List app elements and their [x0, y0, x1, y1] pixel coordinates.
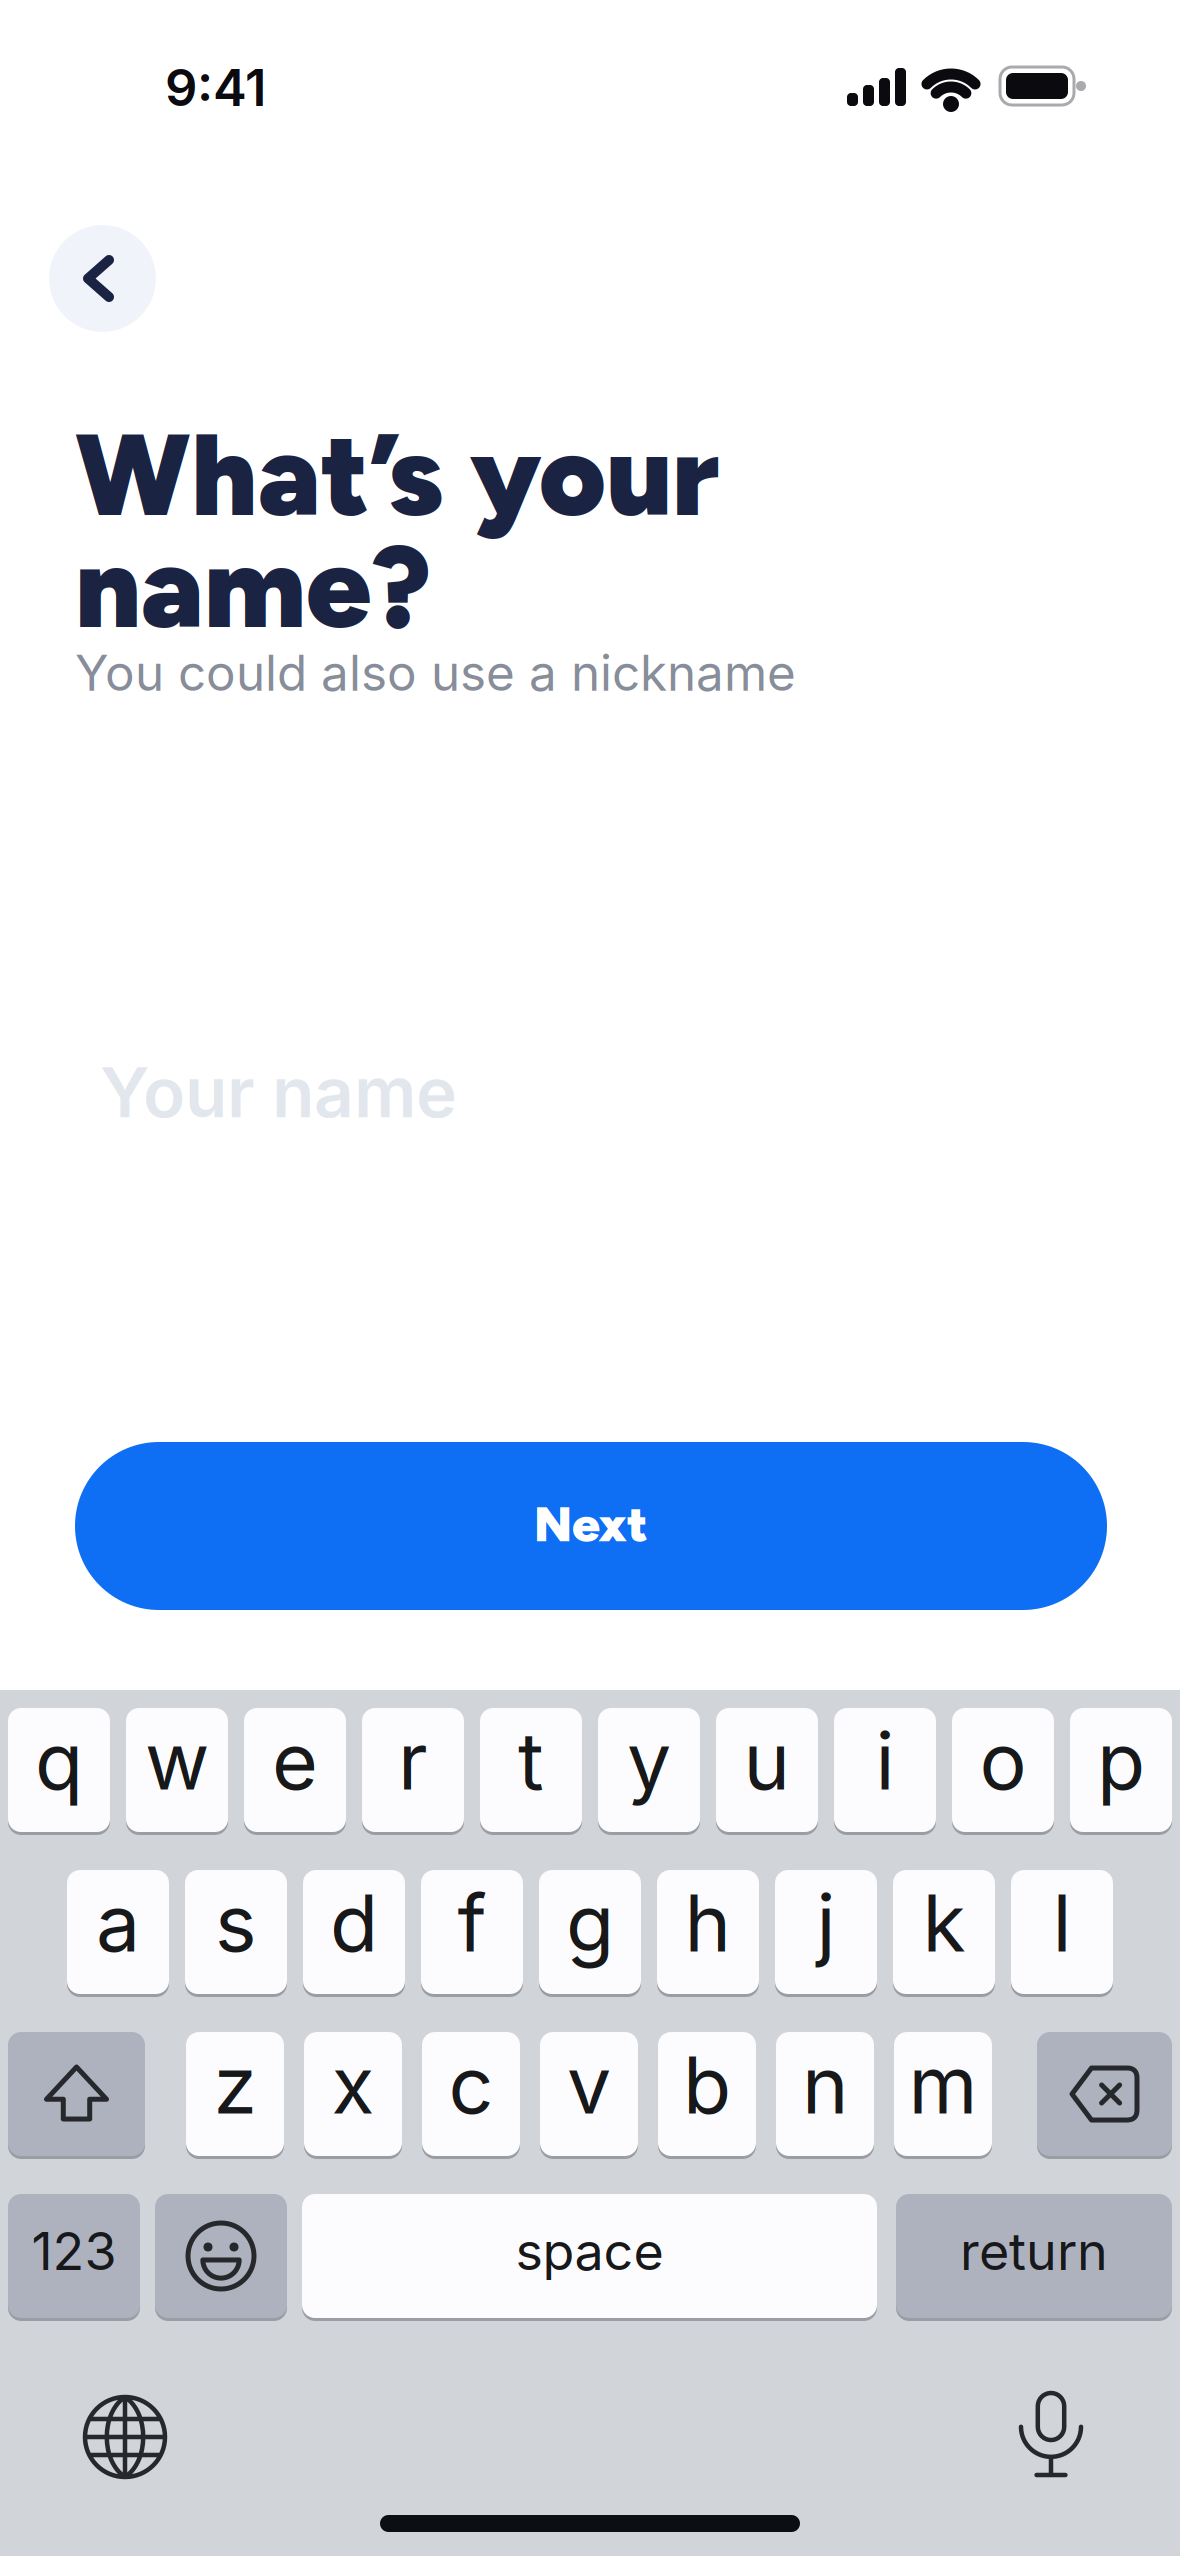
staticText: j [816, 1875, 835, 1971]
button[interactable]: Dictate [1021, 2393, 1081, 2477]
staticText: z [213, 2037, 256, 2133]
staticText: b [683, 2037, 731, 2133]
staticText: e [272, 1713, 318, 1809]
staticText: return [960, 2219, 1108, 2282]
staticText: m [908, 2037, 977, 2133]
staticText: l [1052, 1875, 1071, 1971]
staticText: t [518, 1713, 544, 1809]
staticText: d [330, 1875, 378, 1971]
button[interactable]: u [716, 1708, 818, 1832]
button[interactable]: Next [75, 1442, 1107, 1610]
staticText: q [35, 1713, 83, 1809]
button[interactable]: b [658, 2032, 756, 2156]
staticText: v [567, 2037, 611, 2133]
staticText: What’s your [75, 406, 720, 544]
staticText: o [979, 1713, 1026, 1809]
button[interactable]: y [598, 1708, 700, 1832]
button[interactable]: a [67, 1870, 169, 1994]
staticText: w [145, 1713, 209, 1809]
button[interactable]: return [896, 2194, 1172, 2318]
staticText: n [802, 2037, 848, 2133]
staticText: 123 [31, 2219, 116, 2282]
button[interactable]: v [540, 2032, 638, 2156]
staticText: Next [534, 1494, 648, 1554]
button[interactable]: x [304, 2032, 402, 2156]
button[interactable]: Delete [1037, 2032, 1172, 2156]
button[interactable]: m [894, 2032, 992, 2156]
staticText: 9:41 [165, 57, 266, 118]
staticText: i [875, 1713, 894, 1809]
staticText: x [331, 2037, 374, 2133]
button[interactable]: z [186, 2032, 284, 2156]
button[interactable]: d [303, 1870, 405, 1994]
staticText: c [448, 2037, 493, 2133]
staticText: f [457, 1875, 486, 1971]
button[interactable]: t [480, 1708, 582, 1832]
button[interactable]: k [893, 1870, 995, 1994]
staticText: s [215, 1875, 257, 1971]
button[interactable]: g [539, 1870, 641, 1994]
staticText: a [96, 1875, 140, 1971]
staticText: Your name [100, 1050, 457, 1134]
staticText: g [566, 1875, 614, 1971]
button[interactable]: o [952, 1708, 1054, 1832]
staticText: name? [75, 518, 431, 656]
button[interactable]: w [126, 1708, 228, 1832]
button[interactable]: c [422, 2032, 520, 2156]
button[interactable]: p [1070, 1708, 1172, 1832]
button[interactable]: i [834, 1708, 936, 1832]
staticText: k [922, 1875, 965, 1971]
button[interactable]: h [657, 1870, 759, 1994]
staticText: space [515, 2219, 663, 2282]
staticText: You could also use a nickname [75, 643, 796, 703]
staticText: h [684, 1875, 731, 1971]
button[interactable]: q [8, 1708, 110, 1832]
staticText: y [627, 1713, 671, 1809]
button[interactable]: Back [49, 225, 156, 332]
button[interactable]: l [1011, 1870, 1113, 1994]
button[interactable]: r [362, 1708, 464, 1832]
button[interactable]: n [776, 2032, 874, 2156]
staticText: p [1097, 1713, 1145, 1809]
button[interactable]: Next keyboard [85, 2397, 165, 2477]
button[interactable]: 123 [8, 2194, 140, 2318]
staticText: u [743, 1713, 790, 1809]
button[interactable]: Shift [8, 2032, 145, 2156]
staticText: r [398, 1713, 428, 1809]
button[interactable]: Emoji [155, 2194, 287, 2318]
button[interactable]: j [775, 1870, 877, 1994]
button[interactable]: f [421, 1870, 523, 1994]
button[interactable]: s [185, 1870, 287, 1994]
button[interactable]: space [302, 2194, 877, 2318]
button[interactable]: e [244, 1708, 346, 1832]
